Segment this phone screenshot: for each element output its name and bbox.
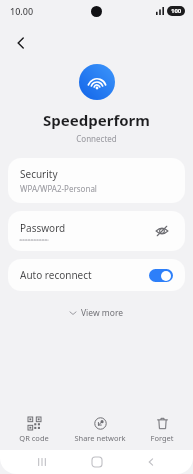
staticText: WPA/WPA2-Personal [20,183,97,194]
button[interactable]: Password [8,211,185,251]
staticText: Share network [74,433,126,443]
button[interactable]: Home [84,450,110,474]
staticText: Password [20,221,66,235]
button[interactable]: Show password [151,220,173,242]
button[interactable]: Forget [144,415,180,445]
staticText: Speedperform [0,110,193,130]
button[interactable]: Auto reconnect toggle [149,269,173,282]
staticText: Forget [150,433,174,443]
staticText: QR code [19,433,49,443]
button[interactable]: Back [138,450,164,474]
staticText: View more [81,307,124,319]
button[interactable]: QR code [13,415,55,445]
button[interactable]: Security [8,158,185,203]
staticText: 10.00 [10,5,34,17]
staticText: Auto reconnect [20,268,149,282]
button[interactable]: Share network [68,415,132,445]
button[interactable]: Recents [29,450,55,474]
staticText: Connected [0,133,193,144]
staticText: 100 [171,7,182,15]
button[interactable]: Auto reconnect [8,259,185,291]
staticText: Security [20,167,58,181]
button[interactable]: Back [6,28,36,58]
button[interactable]: View more [61,303,132,323]
